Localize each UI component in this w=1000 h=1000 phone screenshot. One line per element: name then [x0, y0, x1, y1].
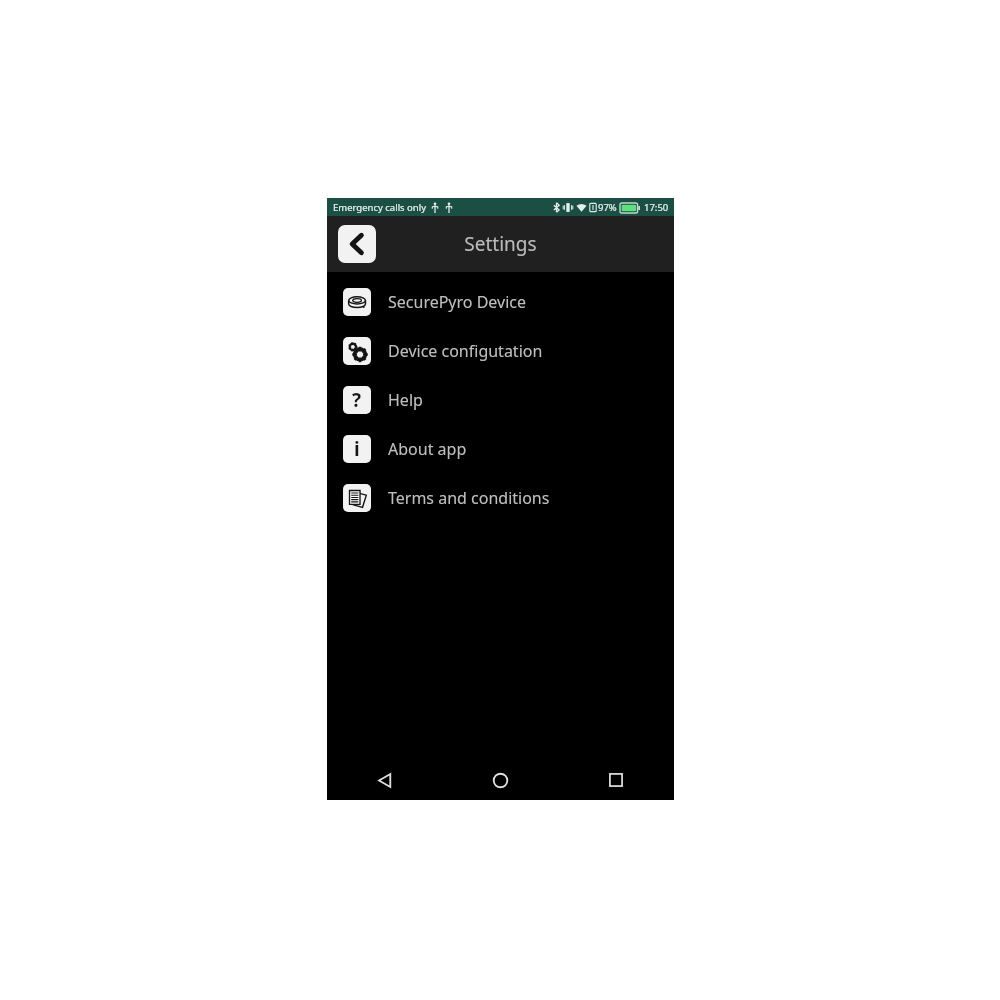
- button[interactable]: SecurePyro Device: [327, 277, 674, 326]
- staticText: Settings: [464, 231, 537, 257]
- button[interactable]: Back: [327, 760, 442, 800]
- button[interactable]: ?: [327, 375, 674, 424]
- staticText: Help: [388, 389, 423, 411]
- staticText: i: [354, 436, 360, 462]
- staticText: Emergency calls only: [333, 201, 427, 214]
- staticText: About app: [388, 438, 467, 460]
- staticText: SecurePyro Device: [388, 291, 527, 313]
- staticText: Device configutation: [388, 340, 543, 362]
- staticText: 17:50: [644, 201, 669, 214]
- button[interactable]: Terms and conditions: [327, 473, 674, 522]
- staticText: ?: [352, 387, 362, 413]
- staticText: 97%: [598, 201, 617, 214]
- button[interactable]: Recents: [558, 760, 674, 800]
- button[interactable]: i: [327, 424, 674, 473]
- button[interactable]: Back: [338, 225, 376, 263]
- button[interactable]: Device configutation: [327, 326, 674, 375]
- staticText: Terms and conditions: [388, 487, 550, 509]
- button[interactable]: Home: [442, 760, 558, 800]
